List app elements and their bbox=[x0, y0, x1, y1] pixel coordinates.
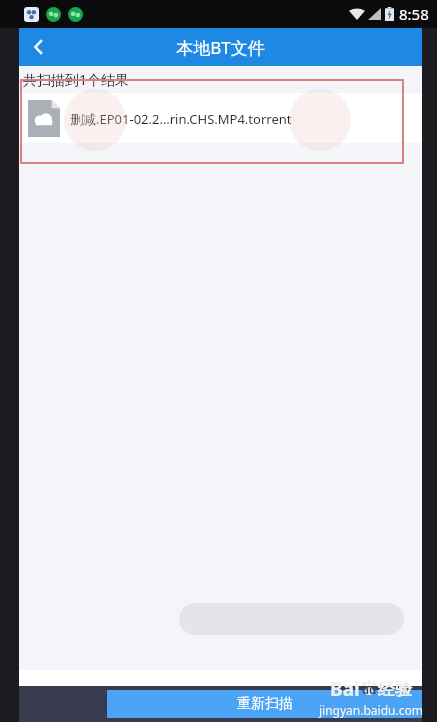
button[interactable]: 重新扫描 bbox=[107, 690, 422, 718]
staticText: 删减.EP01-02.2…rin.CHS.MP4.torrent bbox=[70, 110, 292, 128]
staticText: 本地BT文件 bbox=[176, 36, 265, 59]
staticText: 重新扫描 bbox=[237, 695, 293, 713]
staticText: du bbox=[362, 682, 377, 697]
button[interactable]: 删减.EP01-02.2…rin.CHS.MP4.torrent bbox=[19, 93, 422, 143]
staticText: 经验 bbox=[378, 679, 412, 700]
button[interactable]: Back bbox=[19, 28, 59, 66]
staticText: 共扫描到1个结果 bbox=[23, 70, 130, 89]
staticText: Bai bbox=[330, 676, 360, 702]
staticText: 8:58 bbox=[399, 4, 429, 24]
staticText: jingyan.baidu.com bbox=[319, 702, 423, 718]
